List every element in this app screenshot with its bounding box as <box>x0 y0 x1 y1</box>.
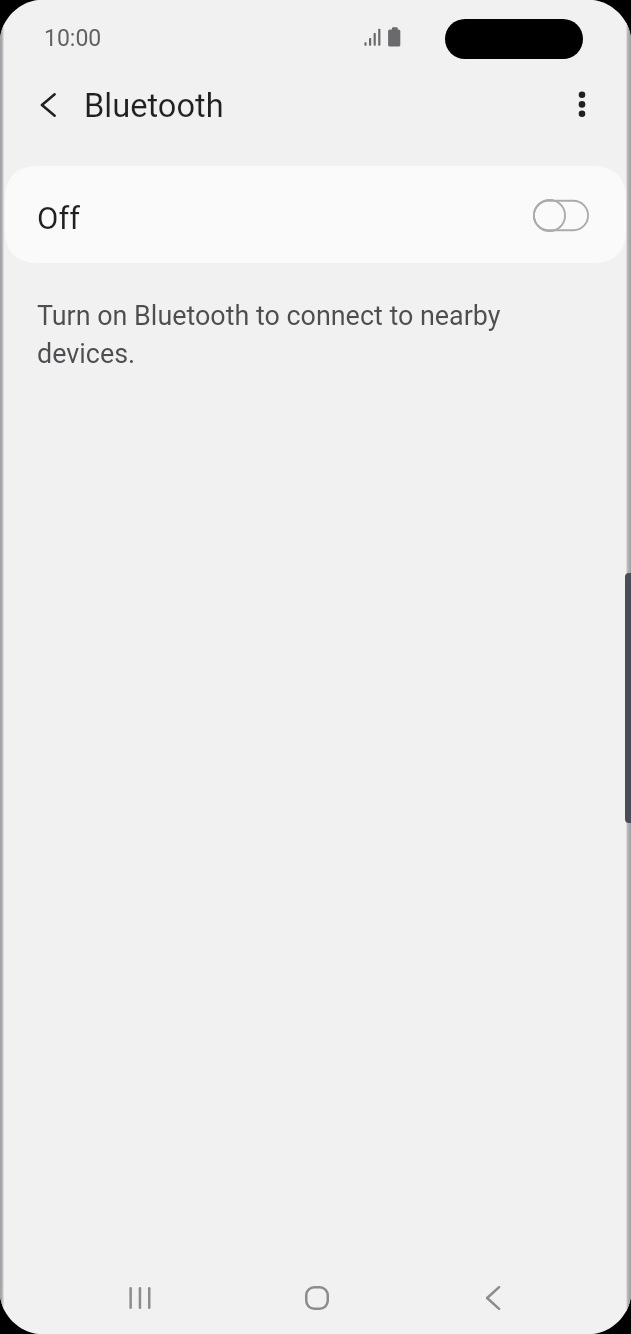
staticText: Turn on Bluetooth to connect to nearby d… <box>37 295 507 371</box>
staticText: 10:00 <box>44 25 102 52</box>
button[interactable]: Recent apps <box>110 1268 170 1328</box>
button[interactable]: Navigate up <box>22 77 78 133</box>
button[interactable]: Home <box>287 1268 347 1328</box>
button[interactable]: Back <box>466 1268 526 1328</box>
staticText: Off <box>37 200 81 236</box>
button[interactable]: Off <box>5 166 626 263</box>
staticText: Bluetooth <box>84 87 224 125</box>
button[interactable]: More options <box>554 78 610 134</box>
